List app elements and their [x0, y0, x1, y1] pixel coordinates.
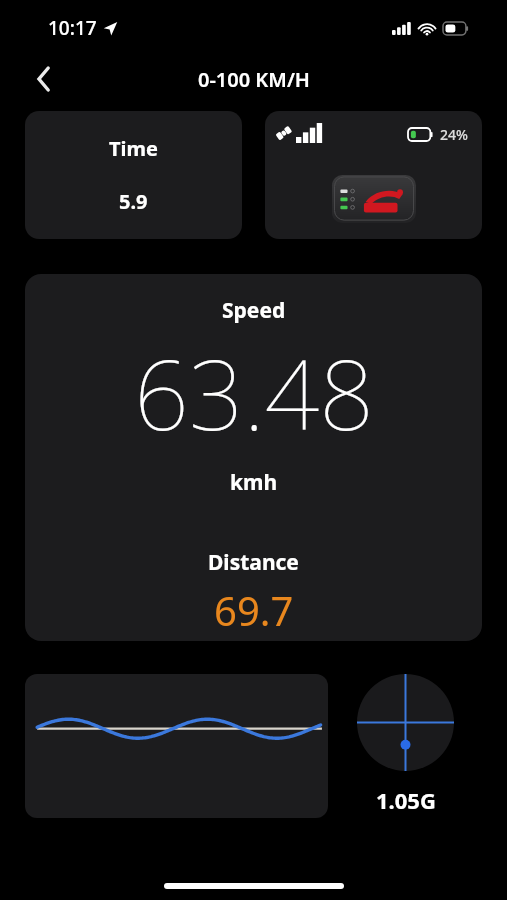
staticText: 1.05G — [376, 785, 436, 815]
staticText: 5.9 — [119, 188, 148, 215]
button[interactable]: GPS satellite — [265, 111, 482, 239]
staticText: 24% — [440, 125, 468, 144]
other: GPS satellite — [275, 124, 293, 142]
staticText: 69.7 — [214, 583, 294, 637]
staticText: Speed — [222, 296, 286, 325]
staticText: 10:17 — [48, 15, 97, 41]
staticText: kmh — [230, 468, 278, 497]
staticText: Time — [109, 135, 158, 162]
staticText: 0-100 KM/H — [198, 66, 310, 93]
other: Device — [332, 175, 416, 223]
other: G force meter — [357, 674, 454, 771]
button[interactable]: Back — [22, 57, 66, 101]
button[interactable]: Time — [25, 111, 242, 239]
staticText: Distance — [208, 548, 299, 577]
staticText: 63.48 — [134, 327, 374, 458]
button[interactable]: Speed — [25, 274, 482, 641]
button[interactable]: G force meter — [348, 674, 463, 815]
button[interactable] — [25, 674, 328, 818]
